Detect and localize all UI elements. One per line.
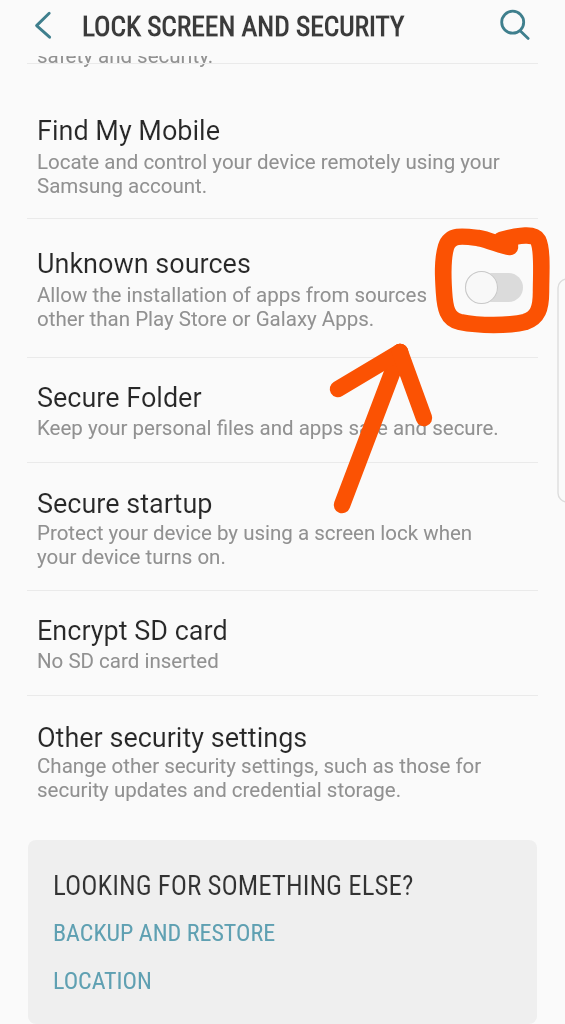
button[interactable]: Secure startup xyxy=(0,463,565,590)
staticText: LOCATION xyxy=(53,967,152,995)
staticText: safety and security. xyxy=(37,44,214,68)
button[interactable]: Back xyxy=(20,3,66,49)
staticText: Allow the installation of apps from sour… xyxy=(37,283,428,331)
staticText: Protect your device by using a screen lo… xyxy=(37,521,473,569)
staticText: No SD card inserted xyxy=(37,649,219,673)
staticText: LOOKING FOR SOMETHING ELSE? xyxy=(53,870,414,902)
button[interactable]: Encrypt SD card xyxy=(0,591,565,695)
button[interactable]: Secure Folder xyxy=(0,358,565,462)
staticText: Secure Folder xyxy=(37,382,202,414)
staticText: Change other security settings, such as … xyxy=(37,754,482,802)
staticText: Locate and control your device remotely … xyxy=(37,150,500,198)
staticText: Other security settings xyxy=(37,722,308,754)
button[interactable]: Unknown sources xyxy=(0,219,565,357)
staticText: Keep your personal files and apps safe a… xyxy=(37,416,499,440)
button[interactable]: Search xyxy=(490,2,538,50)
staticText: LOCK SCREEN AND SECURITY xyxy=(82,11,405,43)
button[interactable]: LOCATION xyxy=(53,967,152,995)
staticText: Unknown sources xyxy=(37,248,251,280)
staticText: BACKUP AND RESTORE xyxy=(53,919,276,947)
button[interactable]: Other security settings xyxy=(0,696,565,826)
staticText: Secure startup xyxy=(37,488,213,520)
staticText: Find My Mobile xyxy=(37,115,220,147)
button[interactable]: Unknown sources toggle xyxy=(463,269,527,307)
button[interactable]: Find My Mobile xyxy=(0,64,565,218)
staticText: Encrypt SD card xyxy=(37,615,228,647)
button[interactable]: BACKUP AND RESTORE xyxy=(53,919,276,947)
